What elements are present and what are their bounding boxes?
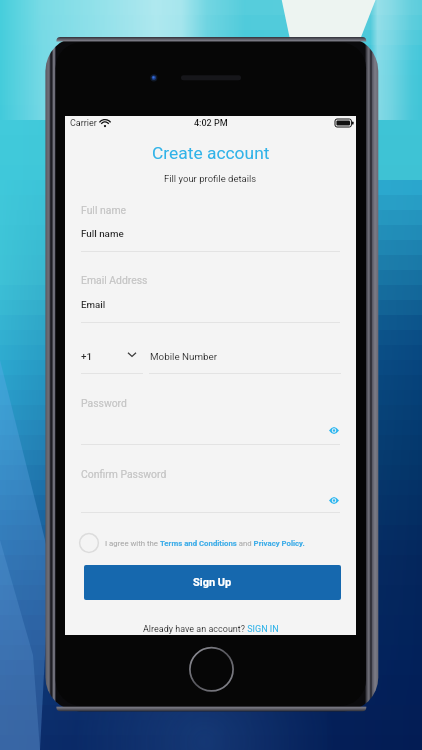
staticText: Confirm Password	[81, 468, 167, 480]
staticText: Fill your profile details	[164, 173, 257, 184]
staticText: 4:02 PM	[194, 118, 228, 129]
button[interactable]: Sign Up	[84, 565, 341, 600]
button[interactable]: Toggle password visibility	[327, 424, 340, 437]
staticText: Sign Up	[193, 576, 232, 589]
staticText: Carrier	[70, 118, 97, 129]
staticText: I agree with the Terms and Conditions an…	[105, 539, 305, 548]
staticText: Already have an account? SIGN IN	[143, 624, 279, 635]
button[interactable]: Toggle password visibility	[327, 494, 340, 507]
staticText: Email	[81, 299, 106, 310]
button[interactable]: Mobile number	[150, 340, 341, 373]
staticText: +1	[81, 351, 93, 362]
button[interactable]: Country code +1	[81, 340, 143, 373]
staticText: Email Address	[81, 274, 148, 286]
button[interactable]: Already have an account? SIGN IN	[65, 623, 356, 635]
staticText: Full name	[81, 228, 124, 239]
button[interactable]: I agree with the Terms and Conditions an…	[79, 532, 305, 554]
staticText: Create account	[152, 143, 270, 163]
staticText: Password	[81, 397, 127, 409]
staticText: Full name	[81, 204, 127, 216]
staticText: Mobile Number	[150, 351, 218, 362]
